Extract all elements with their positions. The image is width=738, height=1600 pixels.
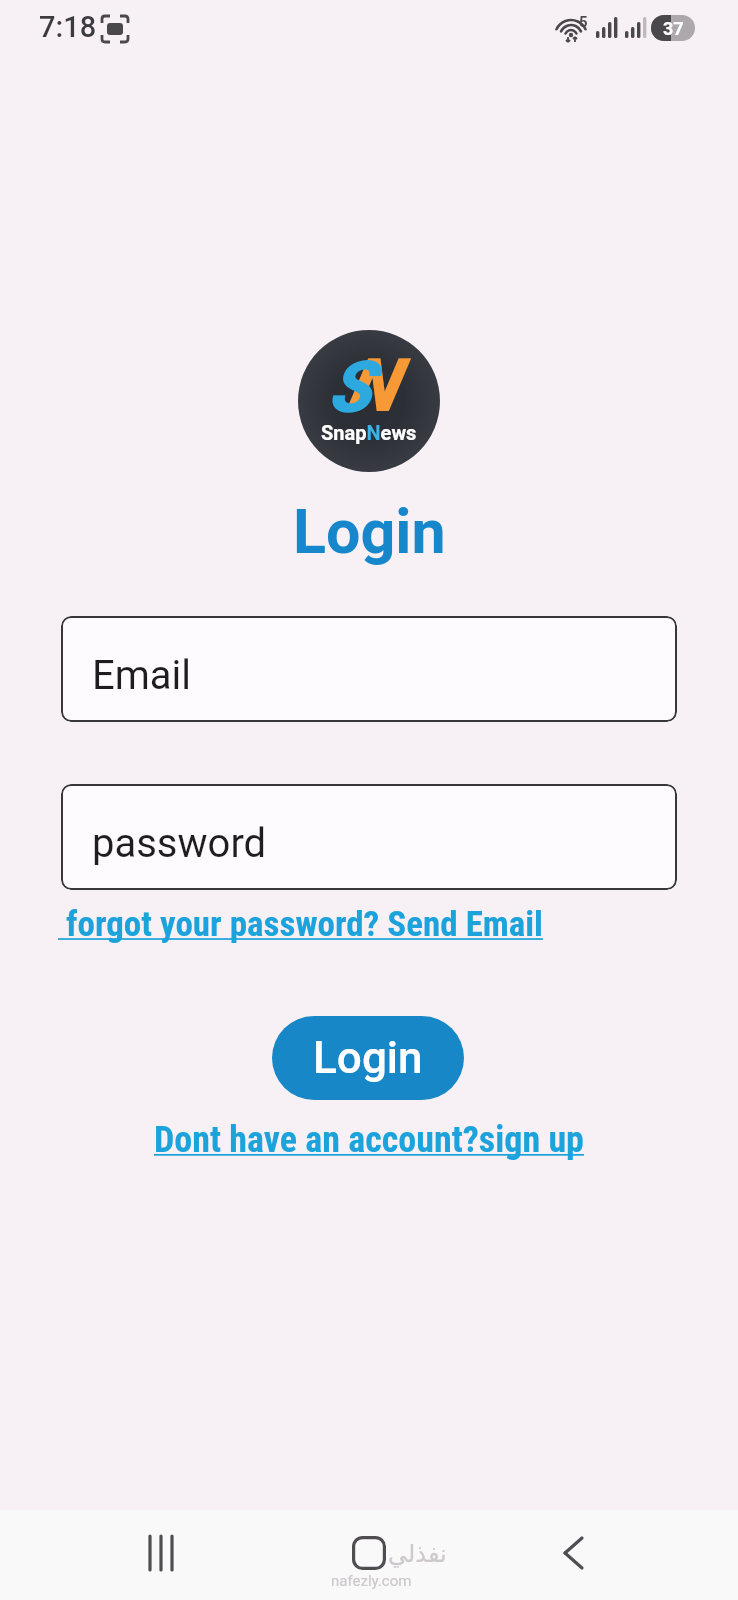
staticText: Login — [313, 1032, 423, 1084]
staticText: نفذلي — [388, 1540, 447, 1568]
button[interactable] — [562, 1537, 584, 1569]
staticText: 37 — [663, 18, 684, 39]
staticText: 7:18 — [39, 10, 97, 44]
button[interactable]: Email — [61, 616, 677, 722]
button[interactable]: forgot your password? Send Email — [58, 904, 543, 945]
staticText: SnapNews — [321, 421, 417, 444]
staticText: Email — [92, 652, 192, 699]
staticText: Login — [293, 496, 446, 567]
button[interactable] — [148, 1536, 176, 1570]
staticText: password — [92, 820, 267, 867]
staticText: S — [328, 345, 372, 429]
button[interactable]: Dont have an account?sign up — [154, 1119, 584, 1161]
button[interactable]: Login — [272, 1016, 464, 1100]
staticText: N — [346, 342, 397, 429]
button[interactable]: password — [61, 784, 677, 890]
button[interactable] — [352, 1536, 386, 1570]
staticText: nafezly.com — [331, 1572, 412, 1590]
staticText: 5 — [579, 13, 588, 31]
